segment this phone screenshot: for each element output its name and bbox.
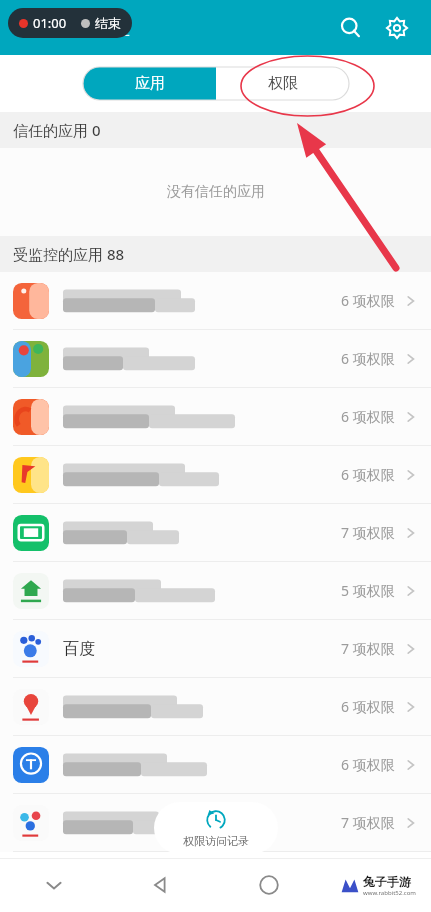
button[interactable]: 权限 — [216, 67, 349, 100]
button[interactable]: 5 项权限 — [0, 562, 431, 620]
button[interactable]: 7 项权限 — [0, 504, 431, 562]
staticText: 权限管理 — [54, 16, 130, 40]
button[interactable]: 6 项权限 — [0, 678, 431, 736]
staticText: 7 项权限 — [341, 523, 395, 542]
staticText: 权限 — [268, 74, 298, 93]
button[interactable]: 6 项权限 — [0, 388, 431, 446]
staticText: 6 项权限 — [341, 697, 395, 716]
staticText: 受监控的应用 88 — [13, 244, 125, 264]
button[interactable]: 6 项权限 — [0, 446, 431, 504]
staticText: 5 项权限 — [341, 581, 395, 600]
staticText: 6 项权限 — [341, 349, 395, 368]
staticText: www.rabbit52.com — [363, 889, 416, 897]
staticText: 6 项权限 — [341, 465, 395, 484]
button[interactable]: 6 项权限 — [0, 330, 431, 388]
staticText: 结束 — [95, 15, 121, 31]
staticText: 权限访问记录 — [183, 834, 249, 848]
staticText: 没有信任的应用 — [167, 183, 265, 201]
button[interactable]: 01:00 — [19, 8, 121, 38]
button[interactable]: Back — [14, 11, 48, 45]
button[interactable]: Hide — [0, 858, 107, 912]
staticText: 应用 — [135, 74, 165, 93]
button[interactable]: 7 项权限 — [0, 794, 431, 852]
button[interactable]: 6 项权限 — [0, 736, 431, 794]
staticText: 6 项权限 — [341, 407, 395, 426]
staticText: 7 项权限 — [341, 813, 395, 832]
staticText: 6 项权限 — [341, 755, 395, 774]
button[interactable]: Back — [107, 858, 215, 912]
button[interactable]: 应用 — [83, 67, 216, 100]
staticText: 百度 — [63, 639, 95, 659]
staticText: 01:00 — [33, 14, 67, 32]
button[interactable]: 权限访问记录 — [154, 802, 278, 854]
staticText: 信任的应用 0 — [13, 120, 101, 140]
staticText: 6 项权限 — [341, 291, 395, 310]
staticText: 7 项权限 — [341, 639, 395, 658]
button[interactable]: Settings — [377, 8, 417, 48]
button[interactable]: Search — [331, 8, 371, 48]
button[interactable]: 6 项权限 — [0, 272, 431, 330]
button[interactable]: 百度 — [0, 620, 431, 678]
button[interactable]: Home — [215, 858, 323, 912]
staticText: 兔子手游 — [363, 874, 411, 889]
